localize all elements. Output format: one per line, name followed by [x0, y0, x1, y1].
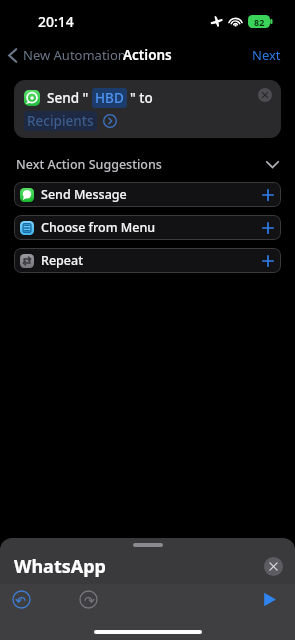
button[interactable]: Remove action — [258, 88, 272, 102]
button[interactable]: Send Message — [14, 182, 281, 207]
button[interactable]: Recipients — [24, 111, 97, 131]
button[interactable]: Add Send Message — [261, 188, 275, 202]
button[interactable]: Choose from Menu — [14, 215, 281, 240]
button[interactable]: Repeat — [14, 248, 281, 273]
button[interactable]: Next — [238, 40, 295, 70]
button[interactable]: HBD — [92, 88, 127, 108]
staticText: Recipients — [27, 112, 94, 130]
staticText: HBD — [95, 89, 124, 107]
button[interactable]: Add Choose from Menu — [261, 221, 275, 235]
button[interactable]: Send " — [14, 80, 281, 138]
button[interactable]: New Automation — [0, 42, 132, 68]
staticText: Actions — [123, 46, 172, 64]
staticText: " to — [130, 89, 153, 107]
staticText: Send " — [47, 89, 89, 107]
staticText: Next — [252, 46, 281, 64]
staticText: 20:14 — [38, 12, 74, 31]
staticText: Repeat — [41, 252, 83, 269]
button[interactable]: Next Action Suggestions — [0, 152, 295, 177]
staticText: Next Action Suggestions — [16, 156, 162, 173]
staticText: Send Message — [41, 186, 127, 203]
staticText: 82 — [254, 16, 265, 28]
button[interactable]: Redo — [79, 590, 98, 609]
staticText: WhatsApp — [14, 554, 106, 579]
button[interactable]: Add Repeat — [261, 254, 275, 268]
button[interactable]: Choose recipients — [103, 114, 117, 128]
button[interactable]: Run — [260, 590, 279, 609]
button[interactable]: Undo — [12, 590, 31, 609]
button[interactable]: Close — [264, 557, 283, 576]
staticText: Choose from Menu — [41, 219, 156, 236]
staticText: New Automation — [23, 46, 126, 64]
